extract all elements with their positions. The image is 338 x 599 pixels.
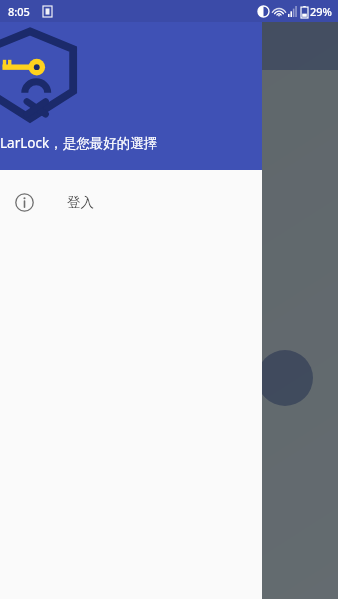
staticText: LarLock，是您最好的選擇 bbox=[0, 134, 158, 152]
staticText: 連線 bbox=[72, 36, 106, 57]
staticText: 登入 bbox=[67, 194, 94, 211]
staticText: 8:05 bbox=[8, 4, 30, 19]
staticText: 29% bbox=[310, 4, 332, 19]
button[interactable]: Add connection bbox=[257, 350, 313, 406]
button[interactable]: 登入 bbox=[0, 178, 262, 226]
button[interactable]: Close navigation drawer bbox=[0, 0, 338, 599]
